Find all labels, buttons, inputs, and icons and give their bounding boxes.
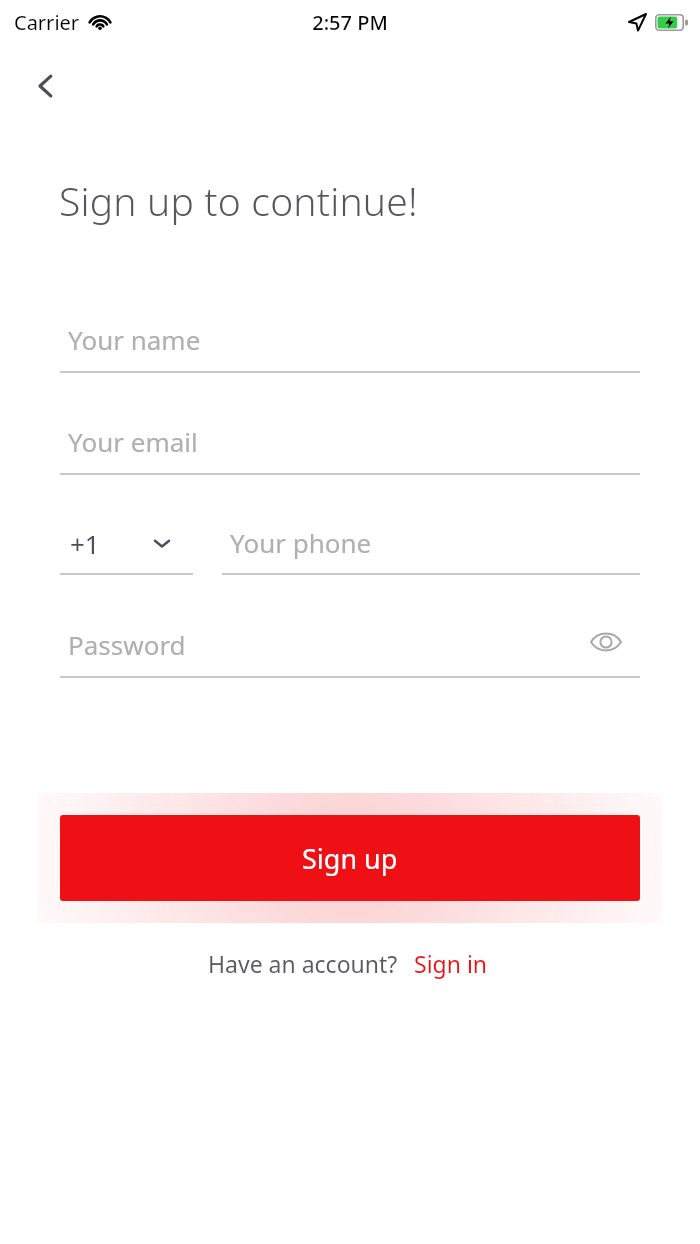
staticText: Carrier [14,9,80,36]
staticText: +1 [70,526,100,561]
staticText: 2:57 PM [312,9,388,36]
button[interactable]: Your phone [222,511,640,573]
staticText: Your phone [230,525,372,560]
staticText: Sign up to continue! [59,174,418,227]
button[interactable]: Sign in [398,944,492,983]
button[interactable]: +1 [60,511,193,575]
staticText: Sign up [302,840,398,877]
staticText: Your name [68,322,201,357]
button[interactable]: Back [14,54,78,118]
button[interactable]: Your email [60,410,640,473]
staticText: Have an account? [208,948,398,979]
button[interactable]: Show password [576,612,636,672]
staticText: Password [68,627,186,662]
staticText: Your email [68,424,198,459]
button[interactable]: Your name [60,308,640,371]
staticText: Sign in [414,948,488,979]
button[interactable]: Sign up [60,815,640,901]
button[interactable]: Password [60,613,640,676]
